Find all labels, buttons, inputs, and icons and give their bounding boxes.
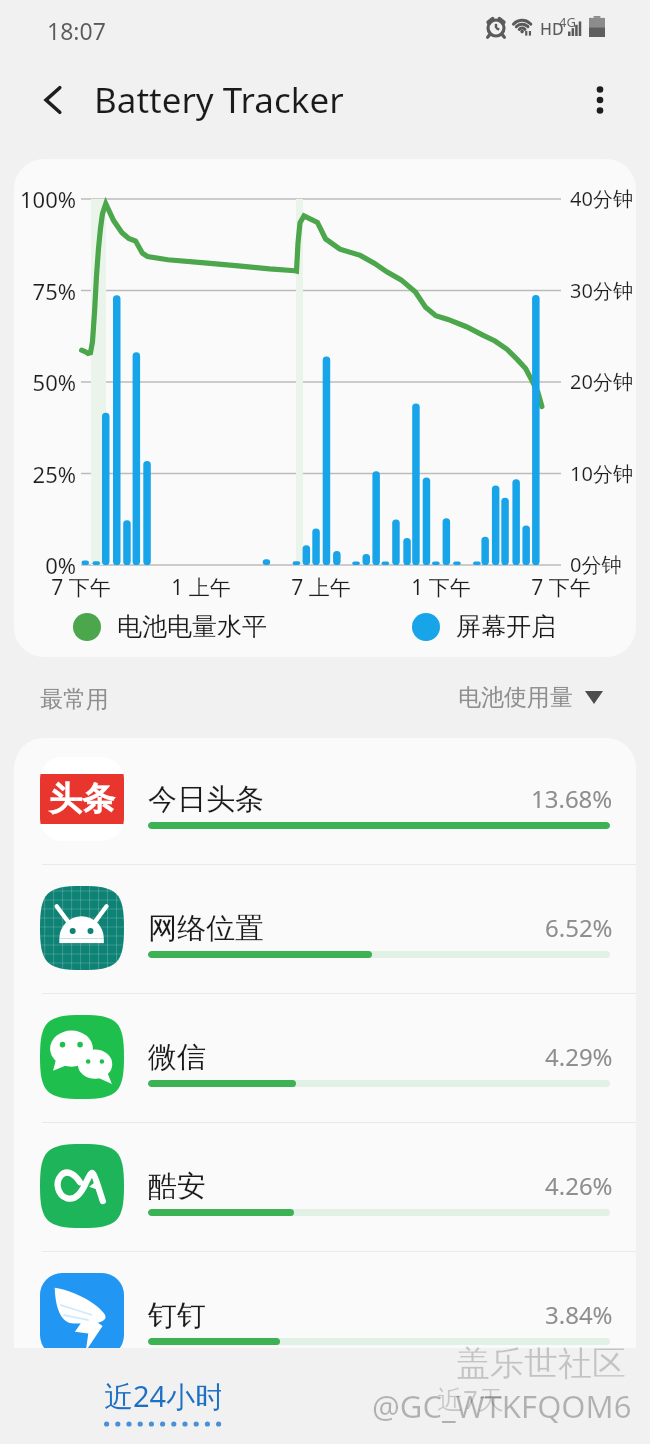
staticText: 25%: [14, 459, 76, 489]
staticText: 10分钟: [570, 460, 633, 487]
button[interactable]: More options: [574, 74, 626, 126]
staticText: 75%: [14, 276, 76, 306]
staticText: 钉钉: [148, 1297, 206, 1334]
staticText: 4.29%: [545, 1040, 613, 1073]
staticText: 7 下午: [491, 573, 631, 602]
staticText: 4G: [559, 13, 576, 31]
staticText: 近24小时: [104, 1376, 221, 1416]
button[interactable]: 网络位置: [14, 864, 636, 992]
staticText: 头条: [49, 778, 115, 820]
staticText: 3.84%: [545, 1298, 613, 1331]
staticText: 50%: [14, 367, 76, 397]
staticText: Battery Tracker: [94, 76, 344, 124]
button[interactable]: 酷安: [14, 1122, 636, 1250]
staticText: 20分钟: [570, 368, 633, 395]
staticText: 40分钟: [570, 185, 633, 212]
staticText: 13.68%: [531, 782, 613, 815]
staticText: 盖乐世社区: [456, 1342, 626, 1385]
staticText: 0分钟: [570, 551, 622, 578]
staticText: 0%: [14, 550, 76, 580]
staticText: 网络位置: [148, 910, 264, 947]
staticText: 30分钟: [570, 277, 633, 304]
staticText: 1 下午: [371, 573, 511, 602]
staticText: 屏幕开启: [456, 611, 556, 642]
button[interactable]: 头条: [14, 738, 636, 863]
staticText: 6.52%: [545, 911, 613, 944]
staticText: 7 下午: [14, 573, 151, 602]
staticText: 酷安: [148, 1168, 206, 1205]
button[interactable]: Back: [28, 74, 80, 126]
staticText: 近7天: [437, 1381, 504, 1417]
staticText: 7 上午: [251, 573, 391, 602]
staticText: 最常用: [40, 685, 109, 714]
staticText: 4.26%: [545, 1169, 613, 1202]
button[interactable]: 微信: [14, 993, 636, 1121]
button[interactable]: 电池使用量: [458, 683, 603, 712]
staticText: 18:07: [47, 15, 106, 46]
staticText: 电池电量水平: [117, 611, 267, 642]
button[interactable]: 钉钉: [14, 1251, 636, 1348]
staticText: 今日头条: [148, 781, 264, 818]
staticText: @GC_WTKFQOM6: [372, 1385, 632, 1427]
button[interactable]: 近24小时: [104, 1376, 221, 1427]
staticText: HD: [540, 18, 564, 40]
staticText: 微信: [148, 1039, 206, 1076]
staticText: 100%: [14, 184, 76, 214]
staticText: 电池使用量: [458, 683, 573, 712]
staticText: 1 上午: [131, 573, 271, 602]
